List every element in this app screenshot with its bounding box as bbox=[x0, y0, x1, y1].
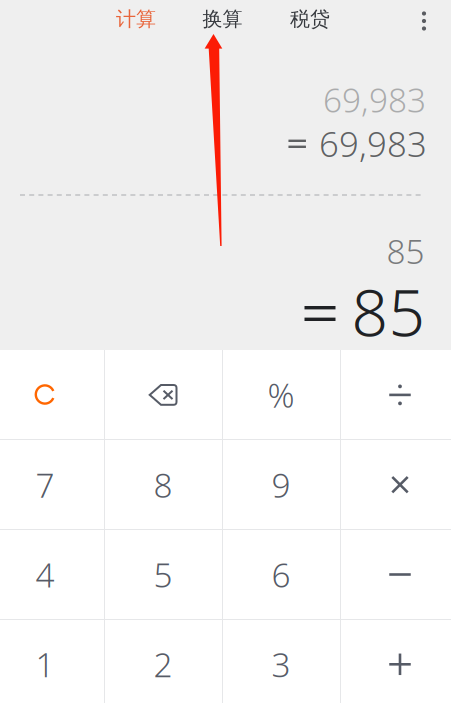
button[interactable]: 7 bbox=[0, 440, 104, 530]
button[interactable]: 6 bbox=[222, 530, 340, 619]
button[interactable] bbox=[341, 619, 451, 703]
button[interactable] bbox=[341, 350, 451, 440]
button[interactable]: 9 bbox=[222, 440, 340, 530]
staticText: 6 bbox=[271, 552, 290, 597]
button[interactable]: 5 bbox=[104, 530, 222, 619]
button[interactable] bbox=[341, 530, 451, 619]
staticText: 8 bbox=[153, 463, 172, 507]
staticText: 69,983 bbox=[323, 77, 426, 122]
staticText: 计算 bbox=[116, 7, 156, 31]
button[interactable]: 8 bbox=[104, 440, 222, 530]
button[interactable]: More options bbox=[404, 1, 444, 41]
staticText: 7 bbox=[35, 463, 54, 507]
staticText: 税贷 bbox=[290, 7, 330, 31]
button[interactable] bbox=[341, 440, 451, 530]
staticText: 9 bbox=[271, 463, 290, 507]
staticText: 5 bbox=[153, 552, 172, 597]
button[interactable]: 税贷 bbox=[282, 0, 338, 39]
button[interactable] bbox=[0, 350, 104, 440]
staticText: 85 bbox=[351, 269, 425, 354]
staticText: 69,983 bbox=[319, 120, 427, 166]
button[interactable]: 换算 bbox=[194, 0, 250, 39]
staticText: 85 bbox=[386, 229, 424, 273]
staticText: 4 bbox=[35, 552, 54, 597]
button[interactable]: 3 bbox=[222, 619, 340, 703]
staticText: 3 bbox=[271, 642, 290, 686]
staticText: % bbox=[267, 373, 294, 417]
button[interactable]: 2 bbox=[104, 619, 222, 703]
button[interactable]: 4 bbox=[0, 530, 104, 619]
staticText: 2 bbox=[153, 642, 172, 686]
button[interactable]: 1 bbox=[0, 619, 104, 703]
staticText: 换算 bbox=[202, 7, 242, 31]
button[interactable] bbox=[104, 350, 222, 440]
button[interactable]: % bbox=[222, 350, 340, 440]
staticText: 1 bbox=[35, 642, 54, 686]
button[interactable]: 计算 bbox=[108, 0, 164, 39]
